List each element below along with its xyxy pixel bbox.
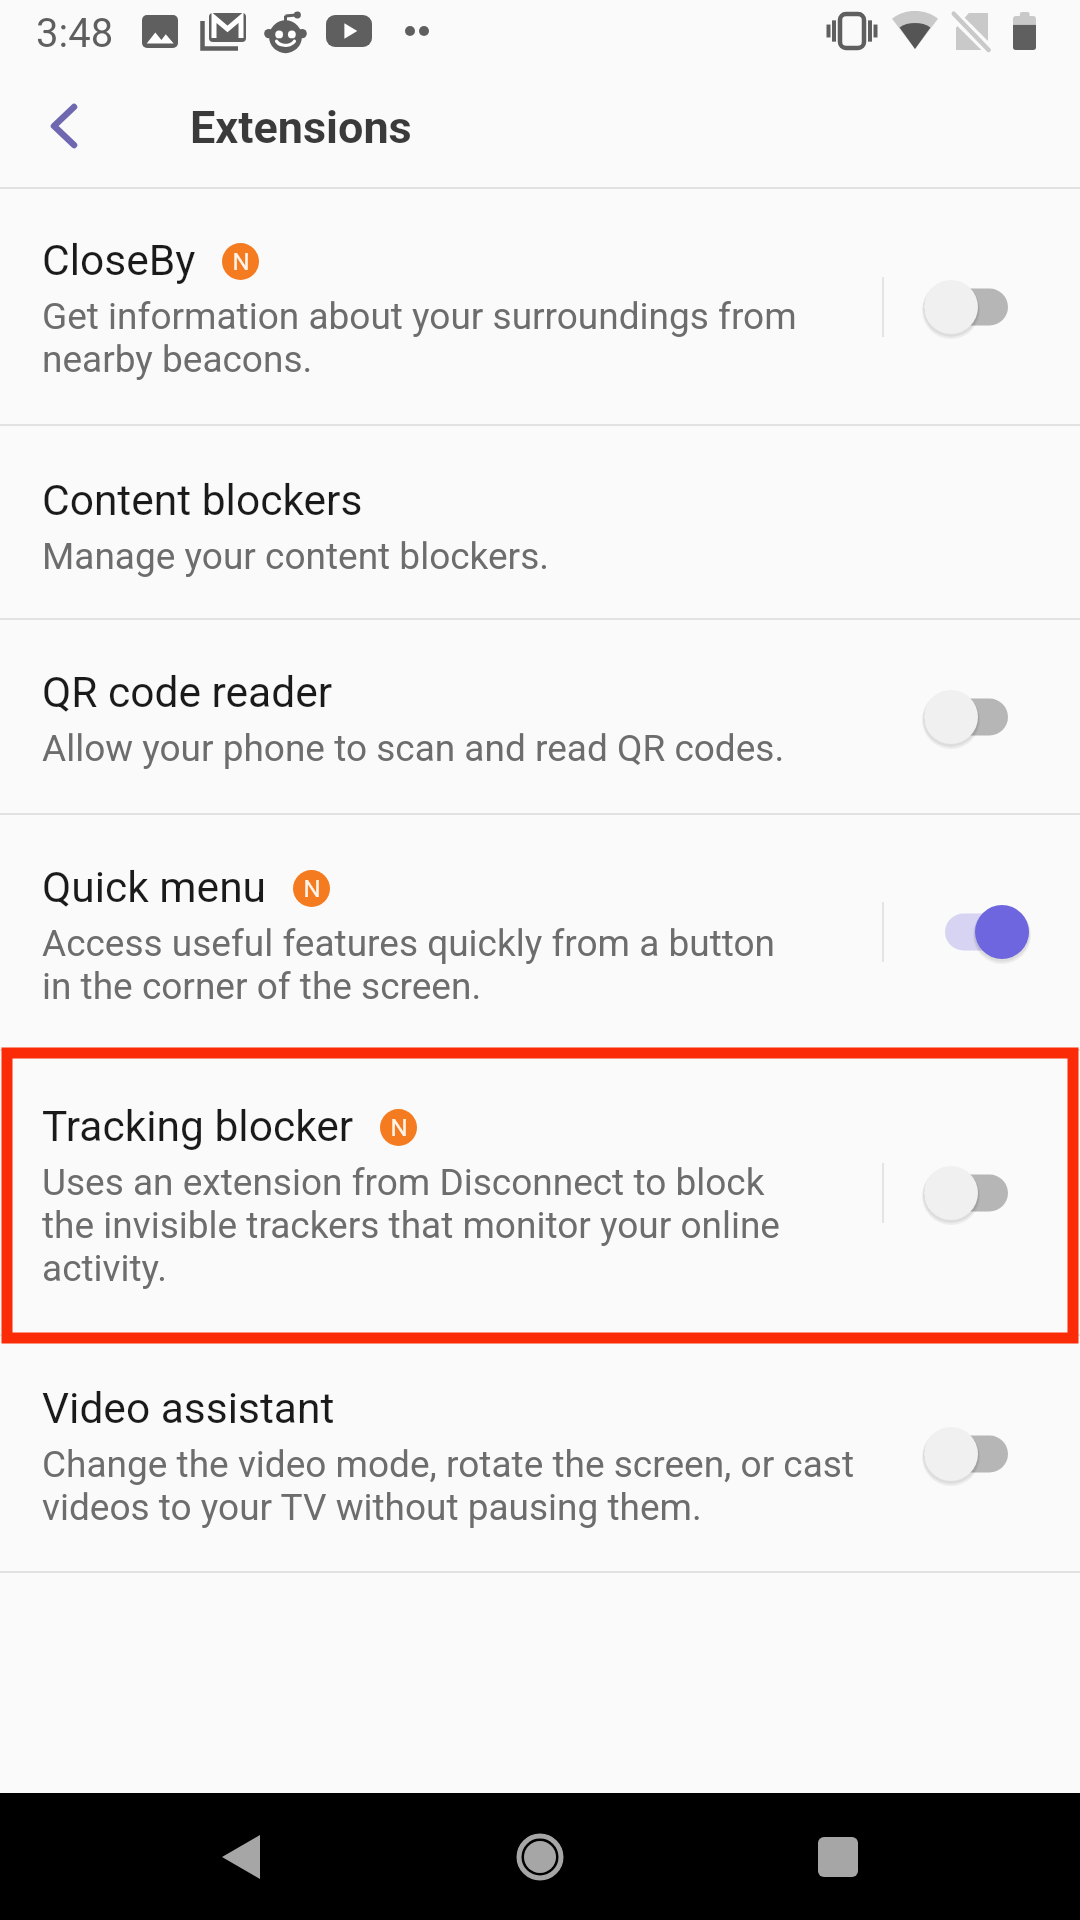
staticText: Uses an extension from Disconnect to blo… bbox=[42, 1161, 765, 1204]
button[interactable]: Tracking blocker bbox=[0, 1050, 1080, 1335]
staticText: CloseBy bbox=[42, 236, 196, 286]
button[interactable]: Toggle Quick menu bbox=[906, 886, 1056, 978]
staticText: nearby beacons. bbox=[42, 338, 313, 381]
button[interactable]: Recent apps bbox=[783, 1793, 893, 1920]
staticText: N bbox=[232, 248, 250, 276]
staticText: Extensions bbox=[190, 101, 412, 154]
staticText: Tracking blocker bbox=[42, 1102, 354, 1152]
staticText: N bbox=[390, 1114, 408, 1142]
button[interactable]: Back bbox=[16, 78, 112, 174]
staticText: Content blockers bbox=[42, 476, 363, 526]
button[interactable]: Back bbox=[186, 1793, 296, 1920]
button[interactable]: QR code reader bbox=[0, 619, 1080, 814]
staticText: Allow your phone to scan and read QR cod… bbox=[42, 727, 785, 770]
staticText: N bbox=[303, 875, 321, 903]
staticText: activity. bbox=[42, 1247, 167, 1290]
button[interactable]: Toggle Tracking blocker bbox=[906, 1147, 1056, 1239]
staticText: Video assistant bbox=[42, 1384, 335, 1434]
button[interactable]: Content blockers bbox=[0, 425, 1080, 619]
button[interactable]: Home bbox=[485, 1793, 595, 1920]
staticText: Access useful features quickly from a bu… bbox=[42, 922, 776, 965]
staticText: Manage your content blockers. bbox=[42, 535, 549, 578]
staticText: QR code reader bbox=[42, 668, 333, 718]
staticText: Quick menu bbox=[42, 863, 267, 913]
button[interactable]: Quick menu bbox=[0, 814, 1080, 1050]
button[interactable]: Toggle QR code reader bbox=[906, 671, 1056, 763]
button[interactable]: CloseBy bbox=[0, 189, 1080, 425]
staticText: in the corner of the screen. bbox=[42, 965, 482, 1008]
staticText: the invisible trackers that monitor your… bbox=[42, 1204, 780, 1247]
button[interactable]: Video assistant bbox=[0, 1335, 1080, 1572]
staticText: Get information about your surroundings … bbox=[42, 295, 797, 338]
button[interactable]: Toggle CloseBy bbox=[906, 261, 1056, 353]
staticText: videos to your TV without pausing them. bbox=[42, 1486, 702, 1529]
staticText: 3:48 bbox=[36, 10, 114, 57]
button[interactable]: Toggle Video assistant bbox=[906, 1408, 1056, 1500]
staticText: Change the video mode, rotate the screen… bbox=[42, 1443, 855, 1486]
